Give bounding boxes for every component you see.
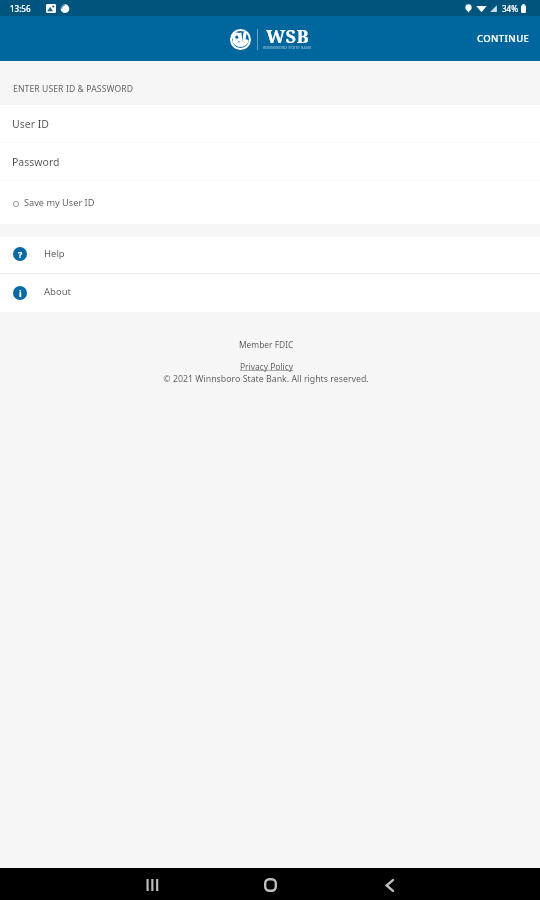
staticText: i [19,287,22,299]
staticText: ? [18,248,23,260]
button[interactable]: ? [0,237,540,273]
staticText: © 2021 Winnsboro State Bank. All rights … [163,373,369,385]
staticText: WINNSBORO STATE BANK [263,45,312,50]
button[interactable]: CONTINUE [464,21,540,56]
staticText: CONTINUE [477,32,530,45]
button[interactable]: User ID [0,105,540,143]
staticText: Member FDIC [239,339,294,350]
button[interactable]: Privacy Policy [240,361,293,372]
staticText: User ID [12,117,49,131]
staticText: About [44,285,71,298]
button[interactable]: Back [367,869,411,900]
button[interactable]: Password [0,143,540,181]
staticText: Help [44,247,65,260]
staticText: 34% [502,3,518,14]
staticText: Save my User ID [24,196,95,209]
staticText: WSB [266,24,309,49]
button[interactable]: Save my User ID [0,181,540,224]
staticText: ENTER USER ID & PASSWORD [13,83,134,95]
button[interactable]: Home [248,869,292,900]
staticText: 13:56 [10,3,31,14]
button[interactable]: Recent apps [130,869,174,900]
button[interactable]: i [0,274,540,312]
staticText: Password [12,155,60,169]
